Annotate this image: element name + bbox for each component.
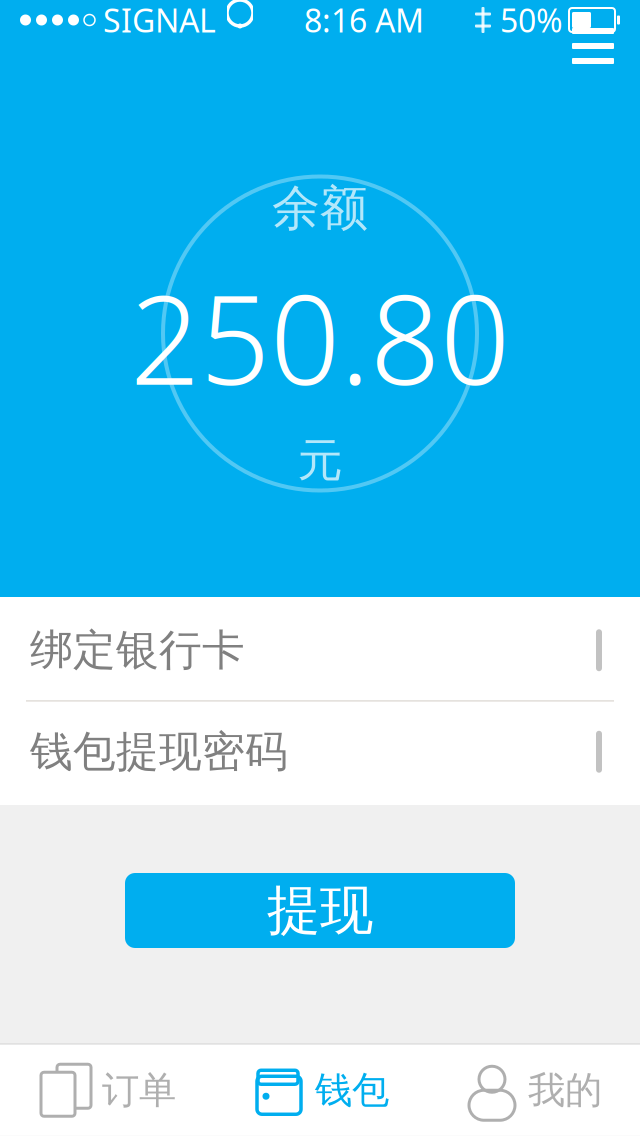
staticText: 元 [297,433,342,488]
button[interactable]: 订单 [0,1044,213,1136]
staticText: 绑定银行卡 [30,624,245,676]
staticText: 我的 [528,1067,602,1113]
staticText: 订单 [102,1067,176,1113]
staticText: 余额 [272,179,368,238]
staticText: 50% [500,0,563,41]
staticText: SIGNAL [103,0,216,41]
staticText: 钱包提现密码 [30,725,288,778]
button[interactable]: 提现 [125,873,515,948]
button[interactable]: 绑定银行卡 [0,600,640,700]
button[interactable]: 钱包 [213,1044,426,1136]
staticText: 250.80 [130,256,510,419]
button[interactable]: 我的 [426,1044,639,1136]
staticText: 8:16 AM [304,0,424,41]
staticText: 钱包 [315,1067,389,1113]
button[interactable]: 钱包提现密码 [0,702,640,802]
button[interactable]: Menu [558,16,628,76]
staticText: 提现 [267,878,373,943]
